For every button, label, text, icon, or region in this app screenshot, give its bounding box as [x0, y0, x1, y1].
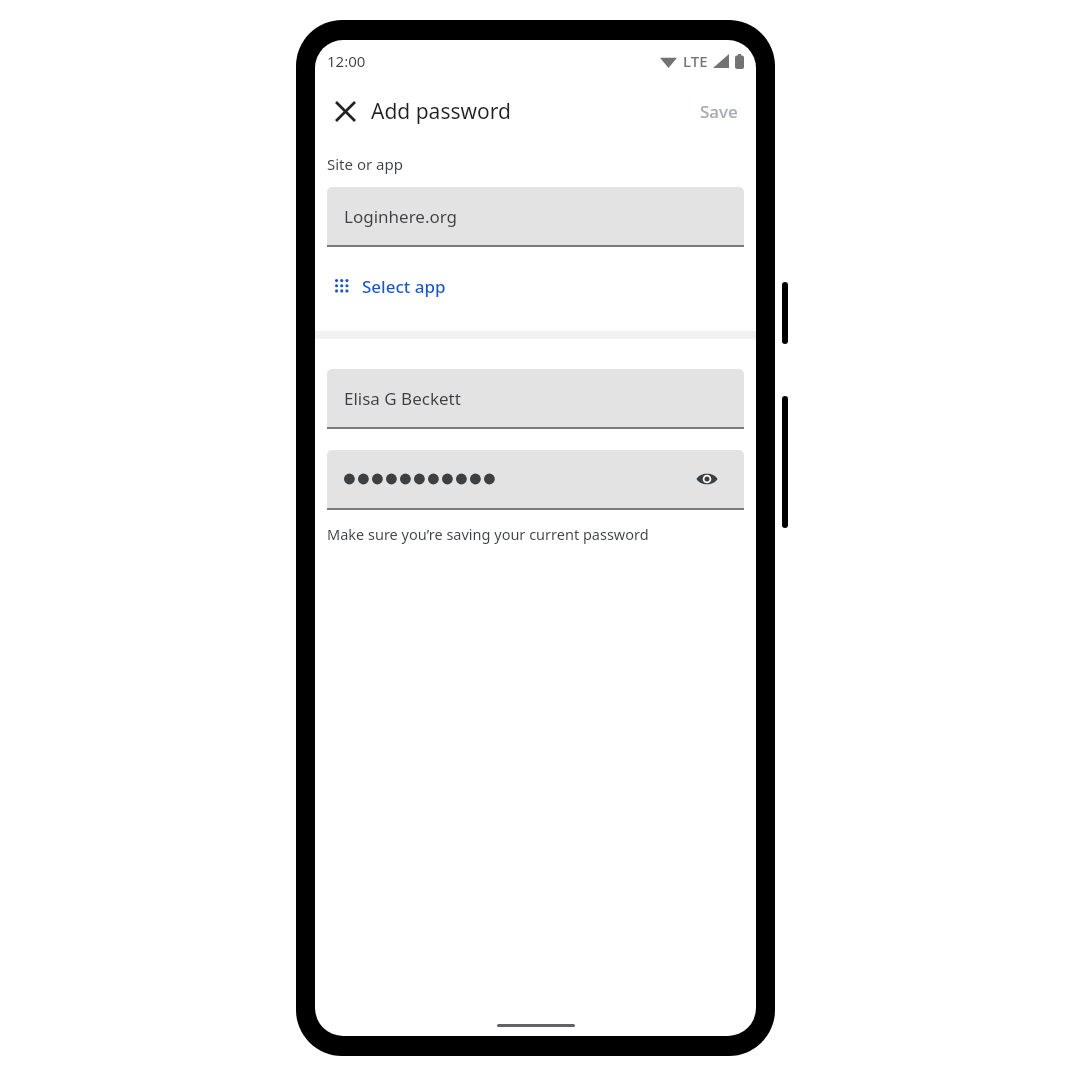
staticText: Loginhere.org	[344, 205, 458, 228]
staticText: LTE	[683, 51, 708, 71]
button[interactable]: Loginhere.org	[327, 187, 744, 245]
button[interactable]: Close	[321, 87, 369, 135]
button[interactable]: Show password	[327, 450, 744, 508]
staticText: 12:00	[327, 51, 366, 71]
staticText: Save	[700, 100, 738, 123]
button[interactable]: Save	[688, 92, 750, 131]
button[interactable]: Select app	[327, 267, 454, 306]
staticText: Site or app	[327, 154, 403, 174]
staticText: Select app	[362, 275, 446, 298]
button[interactable]: Show password	[687, 459, 727, 499]
staticText: Elisa G Beckett	[344, 387, 461, 410]
button[interactable]: Elisa G Beckett	[327, 369, 744, 427]
staticText: Add password	[371, 97, 511, 126]
staticText: Make sure you’re saving your current pas…	[327, 524, 649, 544]
